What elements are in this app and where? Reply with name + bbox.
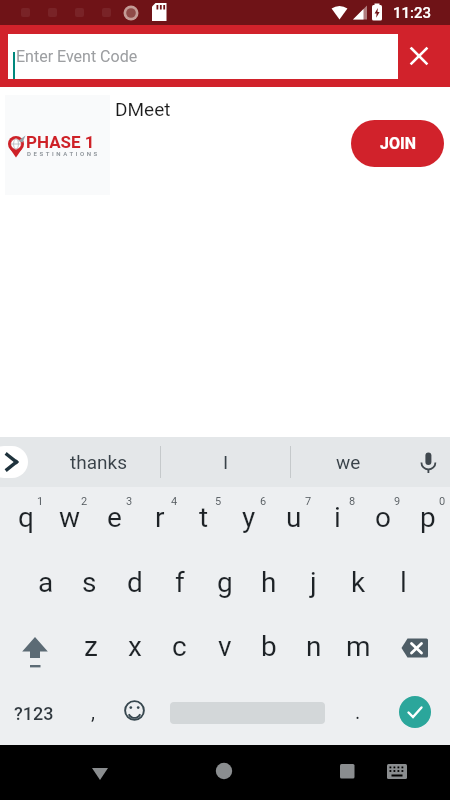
button[interactable]: w: [47, 485, 92, 550]
button[interactable]: [76, 748, 124, 796]
button[interactable]: b: [246, 614, 291, 679]
button[interactable]: t: [181, 485, 226, 550]
button[interactable]: d: [112, 550, 157, 615]
staticText: c: [172, 630, 187, 663]
button[interactable]: p: [405, 485, 450, 550]
button[interactable]: JOIN: [351, 120, 444, 167]
button[interactable]: [376, 750, 418, 794]
button[interactable]: n: [291, 614, 336, 679]
button[interactable]: [0, 446, 28, 478]
staticText: a: [38, 566, 54, 599]
button[interactable]: Enter Event Code: [8, 34, 398, 79]
staticText: m: [346, 630, 371, 663]
button[interactable]: [323, 748, 371, 796]
button[interactable]: [200, 748, 248, 796]
staticText: Enter Event Code: [16, 47, 138, 66]
staticText: 5: [215, 495, 222, 508]
button[interactable]: y: [226, 485, 271, 550]
button[interactable]: [403, 40, 435, 72]
staticText: I: [223, 451, 229, 473]
button[interactable]: x: [112, 614, 157, 679]
staticText: l: [400, 566, 407, 599]
button[interactable]: ?123: [11, 682, 57, 744]
staticText: DMeet: [115, 98, 171, 120]
button[interactable]: h: [246, 550, 291, 615]
staticText: 8: [349, 495, 356, 508]
staticText: k: [351, 566, 366, 599]
button[interactable]: z: [68, 614, 113, 679]
staticText: PHASE 1: [26, 132, 95, 152]
staticText: 9: [394, 495, 401, 508]
staticText: z: [84, 630, 98, 663]
staticText: g: [217, 566, 233, 599]
button[interactable]: [12, 617, 58, 681]
staticText: 3: [126, 495, 133, 508]
button[interactable]: a: [23, 550, 68, 615]
staticText: 4: [171, 495, 178, 508]
staticText: j: [310, 566, 317, 599]
button[interactable]: I: [161, 437, 290, 487]
button[interactable]: e: [92, 485, 137, 550]
button[interactable]: PHASE 1: [0, 87, 450, 200]
staticText: d: [127, 566, 143, 599]
button[interactable]: s: [67, 550, 112, 615]
staticText: w: [59, 501, 81, 534]
button[interactable]: j: [291, 550, 336, 615]
staticText: o: [375, 501, 391, 534]
button[interactable]: m: [336, 614, 381, 679]
staticText: y: [242, 501, 256, 534]
staticText: u: [286, 501, 302, 534]
button[interactable]: u: [271, 485, 316, 550]
staticText: DESTINATIONS: [27, 150, 100, 157]
staticText: p: [420, 501, 436, 534]
staticText: 6: [260, 495, 267, 508]
staticText: e: [107, 501, 122, 534]
staticText: r: [155, 501, 165, 534]
staticText: thanks: [70, 451, 127, 473]
staticText: .: [355, 700, 361, 723]
button[interactable]: [399, 696, 431, 728]
button[interactable]: [392, 617, 438, 681]
button[interactable]: g: [202, 550, 247, 615]
button[interactable]: .: [340, 682, 376, 740]
button[interactable]: f: [157, 550, 202, 615]
button[interactable]: we: [291, 437, 406, 487]
staticText: 11:23: [393, 4, 432, 22]
staticText: 7: [305, 495, 312, 508]
button[interactable]: [115, 694, 151, 730]
staticText: t: [199, 501, 209, 534]
staticText: 1: [37, 495, 44, 508]
staticText: s: [82, 566, 97, 599]
staticText: h: [261, 566, 277, 599]
staticText: v: [218, 630, 232, 663]
button[interactable]: c: [157, 614, 202, 679]
button[interactable]: v: [202, 614, 247, 679]
staticText: JOIN: [380, 134, 416, 153]
staticText: we: [336, 451, 361, 473]
button[interactable]: l: [381, 550, 426, 615]
staticText: i: [334, 501, 341, 534]
button[interactable]: ,: [75, 682, 111, 740]
staticText: 0: [439, 495, 446, 508]
button[interactable]: i: [315, 485, 360, 550]
staticText: ?123: [14, 703, 54, 724]
staticText: 2: [81, 495, 88, 508]
button[interactable]: r: [137, 485, 182, 550]
staticText: b: [261, 630, 277, 663]
button[interactable]: k: [336, 550, 381, 615]
button[interactable]: q: [3, 485, 48, 550]
staticText: ,: [91, 700, 95, 723]
button[interactable]: [408, 442, 448, 482]
button[interactable]: o: [360, 485, 405, 550]
staticText: f: [175, 566, 185, 599]
staticText: x: [128, 630, 142, 663]
staticText: n: [306, 630, 322, 663]
button[interactable]: thanks: [33, 437, 163, 487]
staticText: q: [18, 501, 34, 534]
